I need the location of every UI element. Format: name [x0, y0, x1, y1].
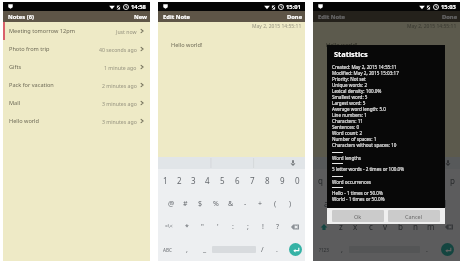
- button[interactable]: e: [341, 169, 355, 192]
- button[interactable]: h: [393, 192, 408, 215]
- button[interactable]: :: [225, 215, 240, 238]
- button[interactable]: 6: [230, 169, 245, 192]
- button[interactable]: 7: [245, 169, 260, 192]
- button[interactable]: -: [238, 192, 253, 215]
- staticText: ?: [276, 222, 280, 232]
- staticText: @: [168, 199, 175, 209]
- button[interactable]: %: [208, 192, 223, 215]
- button[interactable]: n: [408, 215, 423, 238]
- button[interactable]: Enter: [441, 243, 454, 256]
- button[interactable]: Hello world: [3, 112, 150, 130]
- button[interactable]: ABC: [158, 238, 177, 261]
- staticText: j: [414, 198, 417, 209]
- button[interactable]: c: [363, 215, 378, 238]
- staticText: Pack for vacation: [9, 81, 54, 89]
- button[interactable]: m: [423, 215, 438, 238]
- button[interactable]: Gifts: [3, 58, 150, 76]
- button[interactable]: Done: [441, 11, 459, 22]
- button[interactable]: +: [253, 192, 268, 215]
- button[interactable]: ,: [177, 238, 197, 261]
- button[interactable]: j: [408, 192, 423, 215]
- button[interactable]: (: [268, 192, 283, 215]
- button[interactable]: ;: [240, 215, 255, 238]
- staticText: :: [232, 222, 234, 232]
- staticText: Edit Note: [318, 13, 345, 21]
- button[interactable]: 3: [186, 169, 200, 192]
- button[interactable]: a: [319, 192, 333, 215]
- button[interactable]: Ok: [332, 210, 384, 222]
- staticText: Hello world!: [171, 41, 203, 49]
- button[interactable]: Enter: [289, 243, 302, 256]
- button[interactable]: ": [195, 215, 210, 238]
- staticText: *: [185, 222, 189, 232]
- staticText: Hello world: [9, 117, 39, 125]
- button[interactable]: g: [378, 192, 393, 215]
- button[interactable]: @: [164, 192, 178, 215]
- staticText: f: [369, 198, 372, 209]
- button[interactable]: k: [423, 192, 438, 215]
- button[interactable]: b: [393, 215, 408, 238]
- staticText: 5 letter words - 2 times or 100.0%: [332, 166, 405, 172]
- button[interactable]: /: [256, 238, 269, 261]
- button[interactable]: p: [445, 169, 460, 192]
- staticText: x: [353, 221, 358, 232]
- button[interactable]: 8: [260, 169, 275, 192]
- button[interactable]: q: [313, 169, 327, 192]
- staticText: 5: [220, 175, 225, 186]
- button[interactable]: w: [327, 169, 341, 192]
- button[interactable]: s: [333, 192, 348, 215]
- button[interactable]: Photo from trip: [3, 40, 150, 58]
- button[interactable]: Backspace: [438, 215, 460, 238]
- staticText: Lexical density: 100.0%: [332, 88, 382, 94]
- button[interactable]: 0: [290, 169, 305, 192]
- button[interactable]: New: [133, 11, 149, 22]
- button[interactable]: !: [255, 215, 270, 238]
- button[interactable]: d: [348, 192, 363, 215]
- staticText: ': [217, 222, 219, 232]
- button[interactable]: .: [269, 238, 285, 261]
- button[interactable]: 5: [215, 169, 230, 192]
- button[interactable]: ': [210, 215, 225, 238]
- button[interactable]: *: [179, 215, 195, 238]
- button[interactable]: &: [223, 192, 238, 215]
- button[interactable]: _: [197, 238, 212, 261]
- button[interactable]: f: [363, 192, 378, 215]
- button[interactable]: 1: [158, 169, 172, 192]
- button[interactable]: y: [385, 169, 400, 192]
- button[interactable]: $: [193, 192, 208, 215]
- button[interactable]: =\<: [158, 215, 179, 238]
- button[interactable]: 2: [172, 169, 186, 192]
- button[interactable]: Meeting tomorrow 12pm: [3, 22, 150, 40]
- button[interactable]: x: [348, 215, 363, 238]
- button[interactable]: #: [178, 192, 193, 215]
- staticText: Edit Note: [163, 13, 190, 21]
- staticText: 15:03: [441, 3, 456, 11]
- button[interactable]: ?: [270, 215, 285, 238]
- button[interactable]: v: [378, 215, 393, 238]
- button[interactable]: t: [370, 169, 385, 192]
- button[interactable]: ): [283, 192, 298, 215]
- button[interactable]: Done: [286, 11, 304, 22]
- button[interactable]: 4: [200, 169, 215, 192]
- button[interactable]: ?123: [313, 238, 334, 261]
- staticText: ,: [186, 245, 188, 255]
- button[interactable]: Shift: [313, 215, 334, 238]
- button[interactable]: 9: [275, 169, 290, 192]
- staticText: (: [274, 199, 277, 209]
- button[interactable]: z: [334, 215, 348, 238]
- staticText: Gifts: [9, 63, 22, 71]
- button[interactable]: Mall: [3, 94, 150, 112]
- button[interactable]: Backspace: [285, 215, 305, 238]
- button[interactable]: r: [355, 169, 370, 192]
- button[interactable]: u: [400, 169, 415, 192]
- button[interactable]: l: [438, 192, 453, 215]
- button[interactable]: Pack for vacation: [3, 76, 150, 94]
- button[interactable]: Cancel: [388, 210, 440, 222]
